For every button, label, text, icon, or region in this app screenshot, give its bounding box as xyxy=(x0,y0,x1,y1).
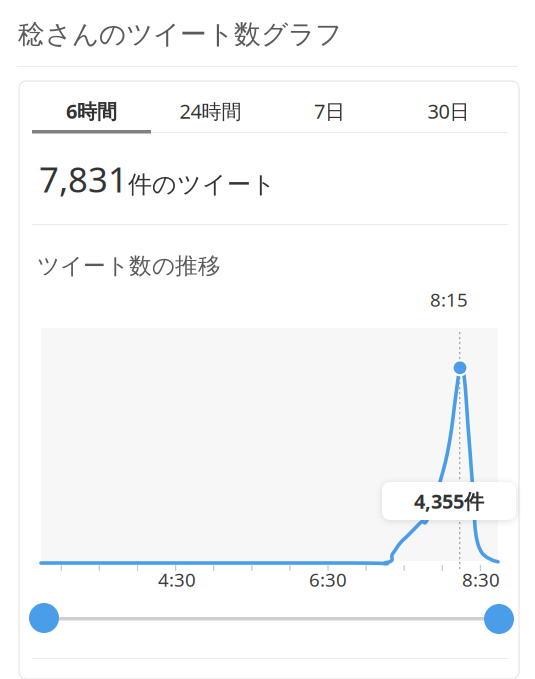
staticText: 24時間 xyxy=(179,98,241,124)
staticText: 8:30 xyxy=(462,567,500,592)
button[interactable]: Range end xyxy=(484,604,514,634)
staticText: 8:15 xyxy=(430,287,468,312)
button[interactable]: 6時間 xyxy=(32,86,151,136)
staticText: 6時間 xyxy=(66,98,117,124)
button[interactable]: 30日 xyxy=(389,86,508,136)
staticText: ツイート数の推移 xyxy=(37,252,221,280)
button[interactable]: 24時間 xyxy=(151,86,270,136)
button[interactable]: Range start xyxy=(29,603,59,633)
staticText: 7,831 xyxy=(39,156,128,202)
button[interactable]: 7日 xyxy=(270,86,389,136)
staticText: 6:30 xyxy=(309,567,347,592)
staticText: 稔さんのツイート数グラフ xyxy=(18,18,342,51)
staticText: 4:30 xyxy=(158,567,196,592)
staticText: 30日 xyxy=(427,98,469,124)
staticText: 件のツイート xyxy=(128,170,276,199)
staticText: 7日 xyxy=(314,98,345,124)
staticText: 4,355件 xyxy=(414,488,484,514)
